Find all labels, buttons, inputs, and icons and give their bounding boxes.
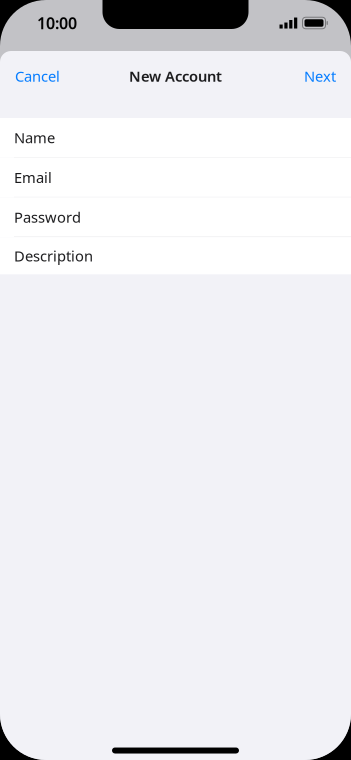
staticText: New Account: [129, 66, 222, 86]
button[interactable]: Password: [0, 197, 351, 237]
button[interactable]: Description: [0, 237, 351, 274]
button[interactable]: Cancel: [0, 54, 72, 98]
staticText: Name: [14, 128, 55, 147]
staticText: Password: [14, 207, 81, 227]
staticText: Description: [14, 246, 93, 265]
staticText: 10:00: [37, 12, 77, 34]
staticText: Email: [14, 168, 52, 187]
button[interactable]: Name: [0, 118, 351, 158]
button[interactable]: Next: [292, 54, 351, 98]
staticText: Next: [304, 66, 336, 86]
button[interactable]: Email: [0, 158, 351, 197]
staticText: Cancel: [15, 66, 60, 86]
